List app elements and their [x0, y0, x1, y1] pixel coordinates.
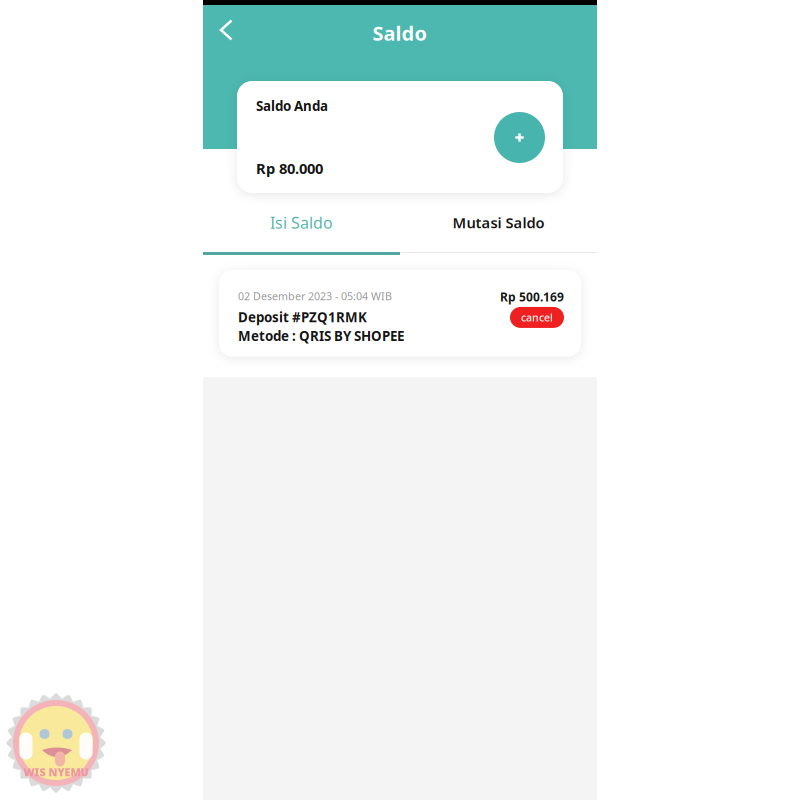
- button[interactable]: Back: [203, 7, 249, 53]
- staticText: WIS NYEMU: [23, 765, 88, 779]
- staticText: Metode : QRIS BY SHOPEE: [238, 327, 404, 345]
- button[interactable]: Isi Saldo: [203, 193, 400, 252]
- staticText: Saldo: [372, 20, 427, 46]
- staticText: Rp 80.000: [256, 158, 323, 178]
- button[interactable]: Mutasi Saldo: [400, 193, 597, 252]
- staticText: Isi Saldo: [270, 212, 333, 233]
- staticText: cancel: [521, 310, 553, 325]
- staticText: Rp 500.169: [500, 289, 564, 305]
- staticText: Mutasi Saldo: [452, 213, 544, 232]
- button[interactable]: Top up balance: [494, 112, 545, 163]
- staticText: 02 Desember 2023 - 05:04 WIB: [238, 289, 392, 303]
- staticText: Saldo Anda: [256, 97, 328, 115]
- button[interactable]: cancel: [510, 307, 564, 328]
- staticText: Deposit #PZQ1RMK: [238, 308, 367, 326]
